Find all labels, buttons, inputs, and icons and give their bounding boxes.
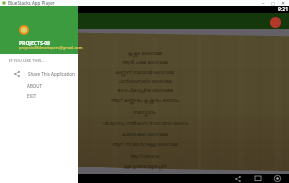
staticText: □ — [271, 1, 275, 6]
button[interactable]: Share This Application — [0, 67, 78, 80]
staticText: projects08developers@gmail.com — [19, 45, 83, 50]
button[interactable]: Settings — [274, 175, 281, 182]
staticText: വിശ്വാസം നൽകുന്ന സനാതന ദൈവ — [102, 120, 188, 127]
button[interactable]: Feedback — [255, 176, 261, 182]
staticText: EXIT — [27, 93, 37, 99]
staticText: IF YOU LIKE THIS... — [9, 58, 45, 63]
staticText: കൃഷ്ണാ ദൈവമേ — [127, 50, 162, 57]
button[interactable]: Account — [19, 25, 29, 35]
staticText: ആറ് ദൈവം — [130, 153, 160, 160]
staticText: ആദി പരമ ദൈവമേ — [122, 59, 168, 66]
staticText: നമസ്കാരം — [133, 110, 156, 115]
button[interactable]: ABOUT — [0, 79, 78, 92]
button[interactable]: Play — [270, 17, 281, 28]
staticText: BlueStacks App Player — [8, 0, 55, 6]
staticText: കണ്ണന് നമയാമി ദൈവമേ — [115, 69, 174, 76]
staticText: 9:21 — [278, 6, 288, 13]
staticText: – — [262, 0, 265, 6]
staticText: കമലാക്ഷാ ദൈവമേ — [121, 131, 168, 138]
staticText: Share This Application — [28, 71, 75, 77]
staticText: ആറ് കണ്ണനും കൃഷ്ണനും ദൈവം — [111, 97, 179, 104]
staticText: പാർത്ഥസഖാ ദൈവമേ — [118, 78, 172, 85]
button[interactable]: EXIT — [0, 89, 78, 102]
staticText: ABOUT — [27, 83, 43, 89]
staticText: PROJECTS-08 — [19, 40, 50, 47]
staticText: ശ്രീ ഗുരുവായൂരപ്പന് — [123, 163, 167, 170]
button[interactable]: Share — [235, 176, 241, 182]
staticText: ആറ് നിറമാർന്നുള്ള ദൈവമേ — [112, 141, 178, 148]
staticText: ഗോപികാപ്രിയ ദൈവമേ — [117, 87, 173, 94]
staticText: ✕ — [281, 0, 286, 6]
